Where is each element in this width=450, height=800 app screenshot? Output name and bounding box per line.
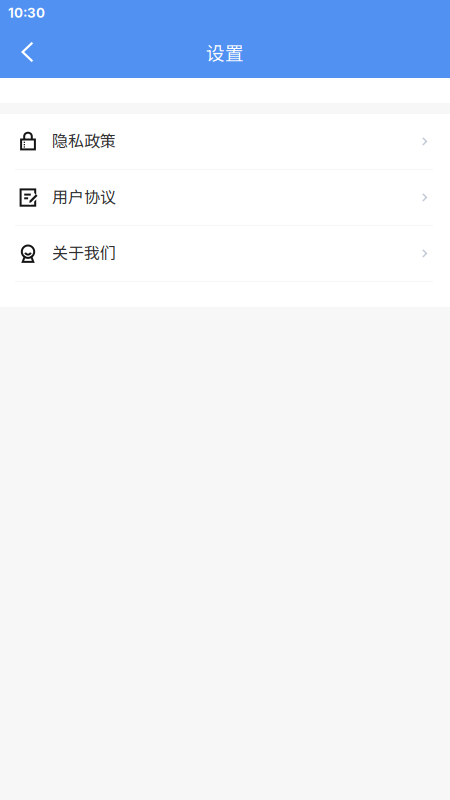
staticText: 关于我们 [52,240,116,264]
button[interactable]: 隐私政策 [0,114,450,170]
staticText: 用户协议 [52,184,116,208]
staticText: 10:30 [8,5,45,21]
button[interactable]: Back [0,29,55,75]
button[interactable]: 用户协议 [0,170,450,226]
staticText: 隐私政策 [52,128,116,152]
button[interactable]: 关于我们 [0,226,450,282]
staticText: 设置 [206,38,244,65]
